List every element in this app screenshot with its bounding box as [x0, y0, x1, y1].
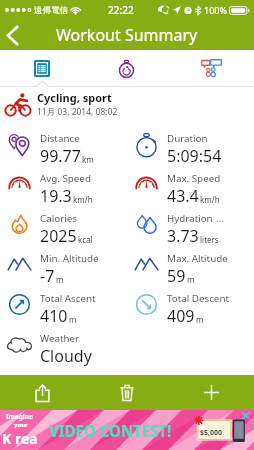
- staticText: 5:09:54: [167, 145, 222, 167]
- staticText: m: [69, 314, 77, 325]
- staticText: $5,000: [200, 428, 223, 438]
- staticText: 410: [40, 305, 68, 327]
- button[interactable]: Summary: [0, 50, 84, 86]
- staticText: Total Ascent: [40, 292, 96, 305]
- button[interactable]: Distance: [0, 120, 127, 160]
- staticText: 43.4: [167, 185, 199, 207]
- staticText: 19.3: [40, 185, 72, 207]
- staticText: Duration: [167, 132, 208, 145]
- button[interactable]: Max. Altitude: [127, 240, 254, 280]
- staticText: Weather: [40, 332, 80, 345]
- staticText: VIDEO CONTEST!: [49, 421, 172, 442]
- staticText: Calories: [40, 212, 77, 225]
- staticText: km/h: [200, 194, 220, 205]
- staticText: Cycling, sport: [37, 90, 112, 105]
- staticText: 409: [167, 305, 195, 327]
- staticText: -7: [40, 265, 55, 287]
- staticText: km/h: [73, 194, 93, 205]
- staticText: Distance: [40, 132, 80, 145]
- staticText: 3.73: [167, 225, 199, 247]
- staticText: Max. Altitude: [167, 252, 228, 265]
- button[interactable]: Duration: [127, 120, 254, 160]
- staticText: m: [56, 274, 64, 285]
- button[interactable]: Avg. Speed: [0, 160, 127, 200]
- staticText: K rea: [2, 429, 38, 448]
- staticText: m: [196, 314, 204, 325]
- button[interactable]: Max. Speed: [127, 160, 254, 200]
- staticText: your: [14, 421, 28, 429]
- button[interactable]: Min. Altitude: [0, 240, 127, 280]
- button[interactable]: Total Ascent: [0, 280, 127, 320]
- button[interactable]: Compare: [169, 50, 254, 86]
- staticText: Min. Altitude: [40, 252, 99, 265]
- staticText: 99.77: [40, 145, 81, 167]
- button[interactable]: Share: [0, 375, 84, 410]
- staticText: 11月 03, 2014, 08:02: [37, 106, 118, 118]
- staticText: Total Descent: [167, 292, 229, 305]
- staticText: 22:22: [108, 3, 134, 17]
- staticText: Avg. Speed: [40, 172, 91, 185]
- staticText: 遠傳電信: [34, 5, 68, 16]
- staticText: kcal: [78, 234, 93, 245]
- staticText: Imagine: [6, 412, 33, 421]
- staticText: km: [82, 154, 94, 165]
- button[interactable]: Cycling, sport: [0, 88, 254, 120]
- button[interactable]: Add: [169, 375, 254, 410]
- staticText: 100%: [204, 4, 227, 16]
- staticText: 59: [167, 265, 186, 287]
- staticText: Workout Summary: [56, 24, 198, 46]
- button[interactable]: Hydration: [127, 200, 254, 240]
- staticText: m: [187, 274, 195, 285]
- staticText: ...: [216, 212, 224, 225]
- button[interactable]: Delete: [84, 375, 169, 410]
- staticText: 2025: [40, 225, 77, 247]
- staticText: Max. Speed: [167, 172, 221, 185]
- staticText: Cloudy: [40, 345, 92, 367]
- staticText: Hydration: [167, 212, 216, 225]
- button[interactable]: Calories: [0, 200, 127, 240]
- button[interactable]: Total Descent: [127, 280, 254, 320]
- button[interactable]: Weather: [0, 320, 127, 360]
- staticText: liters: [200, 234, 219, 245]
- button[interactable]: Back: [0, 20, 24, 50]
- button[interactable]: Advertisement: [0, 410, 254, 450]
- button[interactable]: Laps: [84, 50, 169, 86]
